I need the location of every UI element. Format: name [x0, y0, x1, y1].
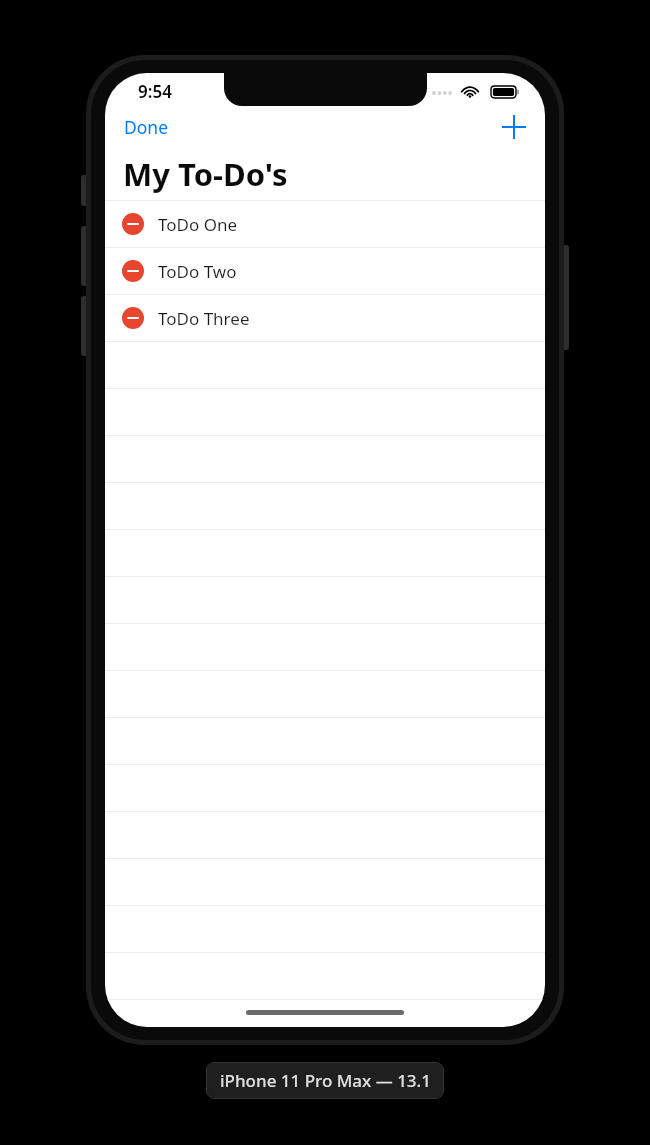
button[interactable]: Delete ToDo One	[105, 201, 545, 247]
staticText: ToDo Two	[158, 260, 237, 283]
staticText: 9:54	[138, 80, 172, 103]
staticText: ToDo One	[158, 213, 238, 236]
button[interactable]: Add to-do	[497, 110, 531, 144]
button[interactable]: Done	[119, 109, 174, 145]
button[interactable]: Delete ToDo Two	[105, 248, 545, 294]
button[interactable]: Delete ToDo One	[118, 209, 148, 239]
button[interactable]: Delete ToDo Three	[118, 303, 148, 333]
button[interactable]: Delete ToDo Two	[118, 256, 148, 286]
staticText: ToDo Three	[158, 307, 250, 330]
staticText: iPhone 11 Pro Max — 13.1	[220, 1069, 431, 1092]
button[interactable]: Delete ToDo Three	[105, 295, 545, 341]
staticText: Done	[124, 115, 169, 139]
staticText: My To-Do's	[123, 153, 288, 195]
